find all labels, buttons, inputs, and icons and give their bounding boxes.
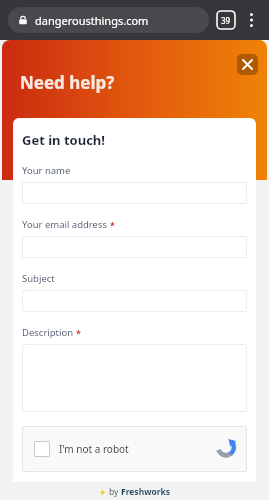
staticText: * bbox=[76, 327, 81, 339]
staticText: I'm not a robot bbox=[59, 442, 129, 456]
button[interactable]: Your name input bbox=[22, 182, 247, 204]
staticText: Subject bbox=[22, 272, 55, 285]
staticText: Description bbox=[22, 326, 74, 339]
staticText: Need help? bbox=[20, 71, 115, 94]
staticText: dangerousthings.com bbox=[35, 13, 149, 28]
staticText: Your name bbox=[22, 164, 71, 177]
staticText: * bbox=[110, 219, 115, 231]
button[interactable]: dangerousthings.com bbox=[8, 7, 209, 33]
staticText: 39 bbox=[221, 15, 231, 26]
button[interactable]: Description input bbox=[22, 344, 247, 412]
button[interactable]: I'm not a robot checkbox bbox=[22, 426, 247, 472]
button[interactable]: Tabs bbox=[217, 11, 235, 29]
button[interactable]: Your email address input bbox=[22, 236, 247, 258]
button[interactable]: Subject input bbox=[22, 290, 247, 312]
button[interactable]: Close bbox=[237, 54, 258, 75]
staticText: Freshworks bbox=[121, 486, 171, 498]
staticText: Your email address bbox=[22, 218, 108, 231]
button[interactable]: I'm not a robot checkbox bbox=[34, 441, 50, 457]
staticText: Get in touch! bbox=[22, 131, 105, 149]
staticText: by bbox=[109, 486, 121, 498]
button[interactable]: More options bbox=[241, 10, 261, 30]
